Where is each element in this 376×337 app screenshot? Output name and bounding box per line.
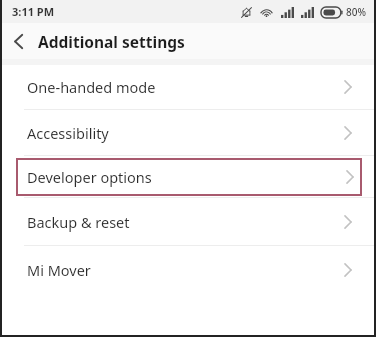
staticText: 3:11 PM: [12, 4, 55, 19]
button[interactable]: Accessibility: [2, 110, 374, 155]
button[interactable]: One-handed mode: [2, 65, 374, 109]
button[interactable]: Mi Mover: [2, 246, 374, 294]
button[interactable]: Back: [2, 23, 34, 59]
button[interactable]: Developer options: [16, 158, 362, 196]
staticText: Accessibility: [27, 123, 109, 143]
staticText: Mi Mover: [27, 260, 91, 280]
staticText: 80%: [346, 5, 366, 19]
staticText: Additional settings: [38, 31, 185, 52]
staticText: Backup & reset: [27, 212, 130, 232]
staticText: One-handed mode: [27, 77, 156, 97]
button[interactable]: Backup & reset: [2, 198, 374, 245]
staticText: Developer options: [27, 167, 152, 187]
